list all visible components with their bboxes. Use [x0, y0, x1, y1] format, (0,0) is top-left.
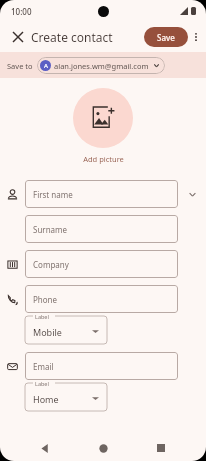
button[interactable]: Close	[6, 25, 30, 49]
button[interactable]: Label	[25, 316, 107, 344]
staticText: Save	[157, 32, 175, 43]
button[interactable]: Phone	[25, 285, 178, 313]
staticText: Add picture	[83, 154, 124, 164]
staticText: Phone	[33, 294, 58, 305]
button[interactable]: Expand name fields	[178, 180, 206, 208]
button[interactable]: Surname	[25, 215, 178, 243]
button[interactable]: Email	[25, 352, 178, 380]
button[interactable]: Company	[25, 250, 178, 278]
button[interactable]: A	[37, 57, 165, 74]
staticText: Save to	[7, 61, 33, 71]
staticText: A	[44, 62, 48, 70]
button[interactable]: More options	[188, 29, 204, 45]
staticText: 10:00	[11, 6, 32, 17]
staticText: Email	[33, 361, 54, 372]
staticText: Label	[35, 380, 49, 387]
staticText: Surname	[33, 224, 68, 235]
button[interactable]: Back	[32, 435, 58, 461]
button[interactable]: Label	[25, 383, 107, 411]
button[interactable]: Recent apps	[148, 435, 174, 461]
button[interactable]: First name	[25, 180, 178, 208]
staticText: Company	[33, 259, 69, 270]
staticText: alan.jones.wm@gmail.com	[54, 61, 149, 71]
button[interactable]: Home	[90, 435, 116, 461]
staticText: Mobile	[33, 326, 62, 338]
staticText: First name	[33, 189, 73, 200]
staticText: Create contact	[31, 29, 113, 45]
staticText: Label	[35, 313, 49, 320]
button[interactable]: Add picture	[73, 88, 133, 148]
staticText: Home	[33, 393, 59, 405]
button[interactable]: Save	[144, 27, 188, 47]
